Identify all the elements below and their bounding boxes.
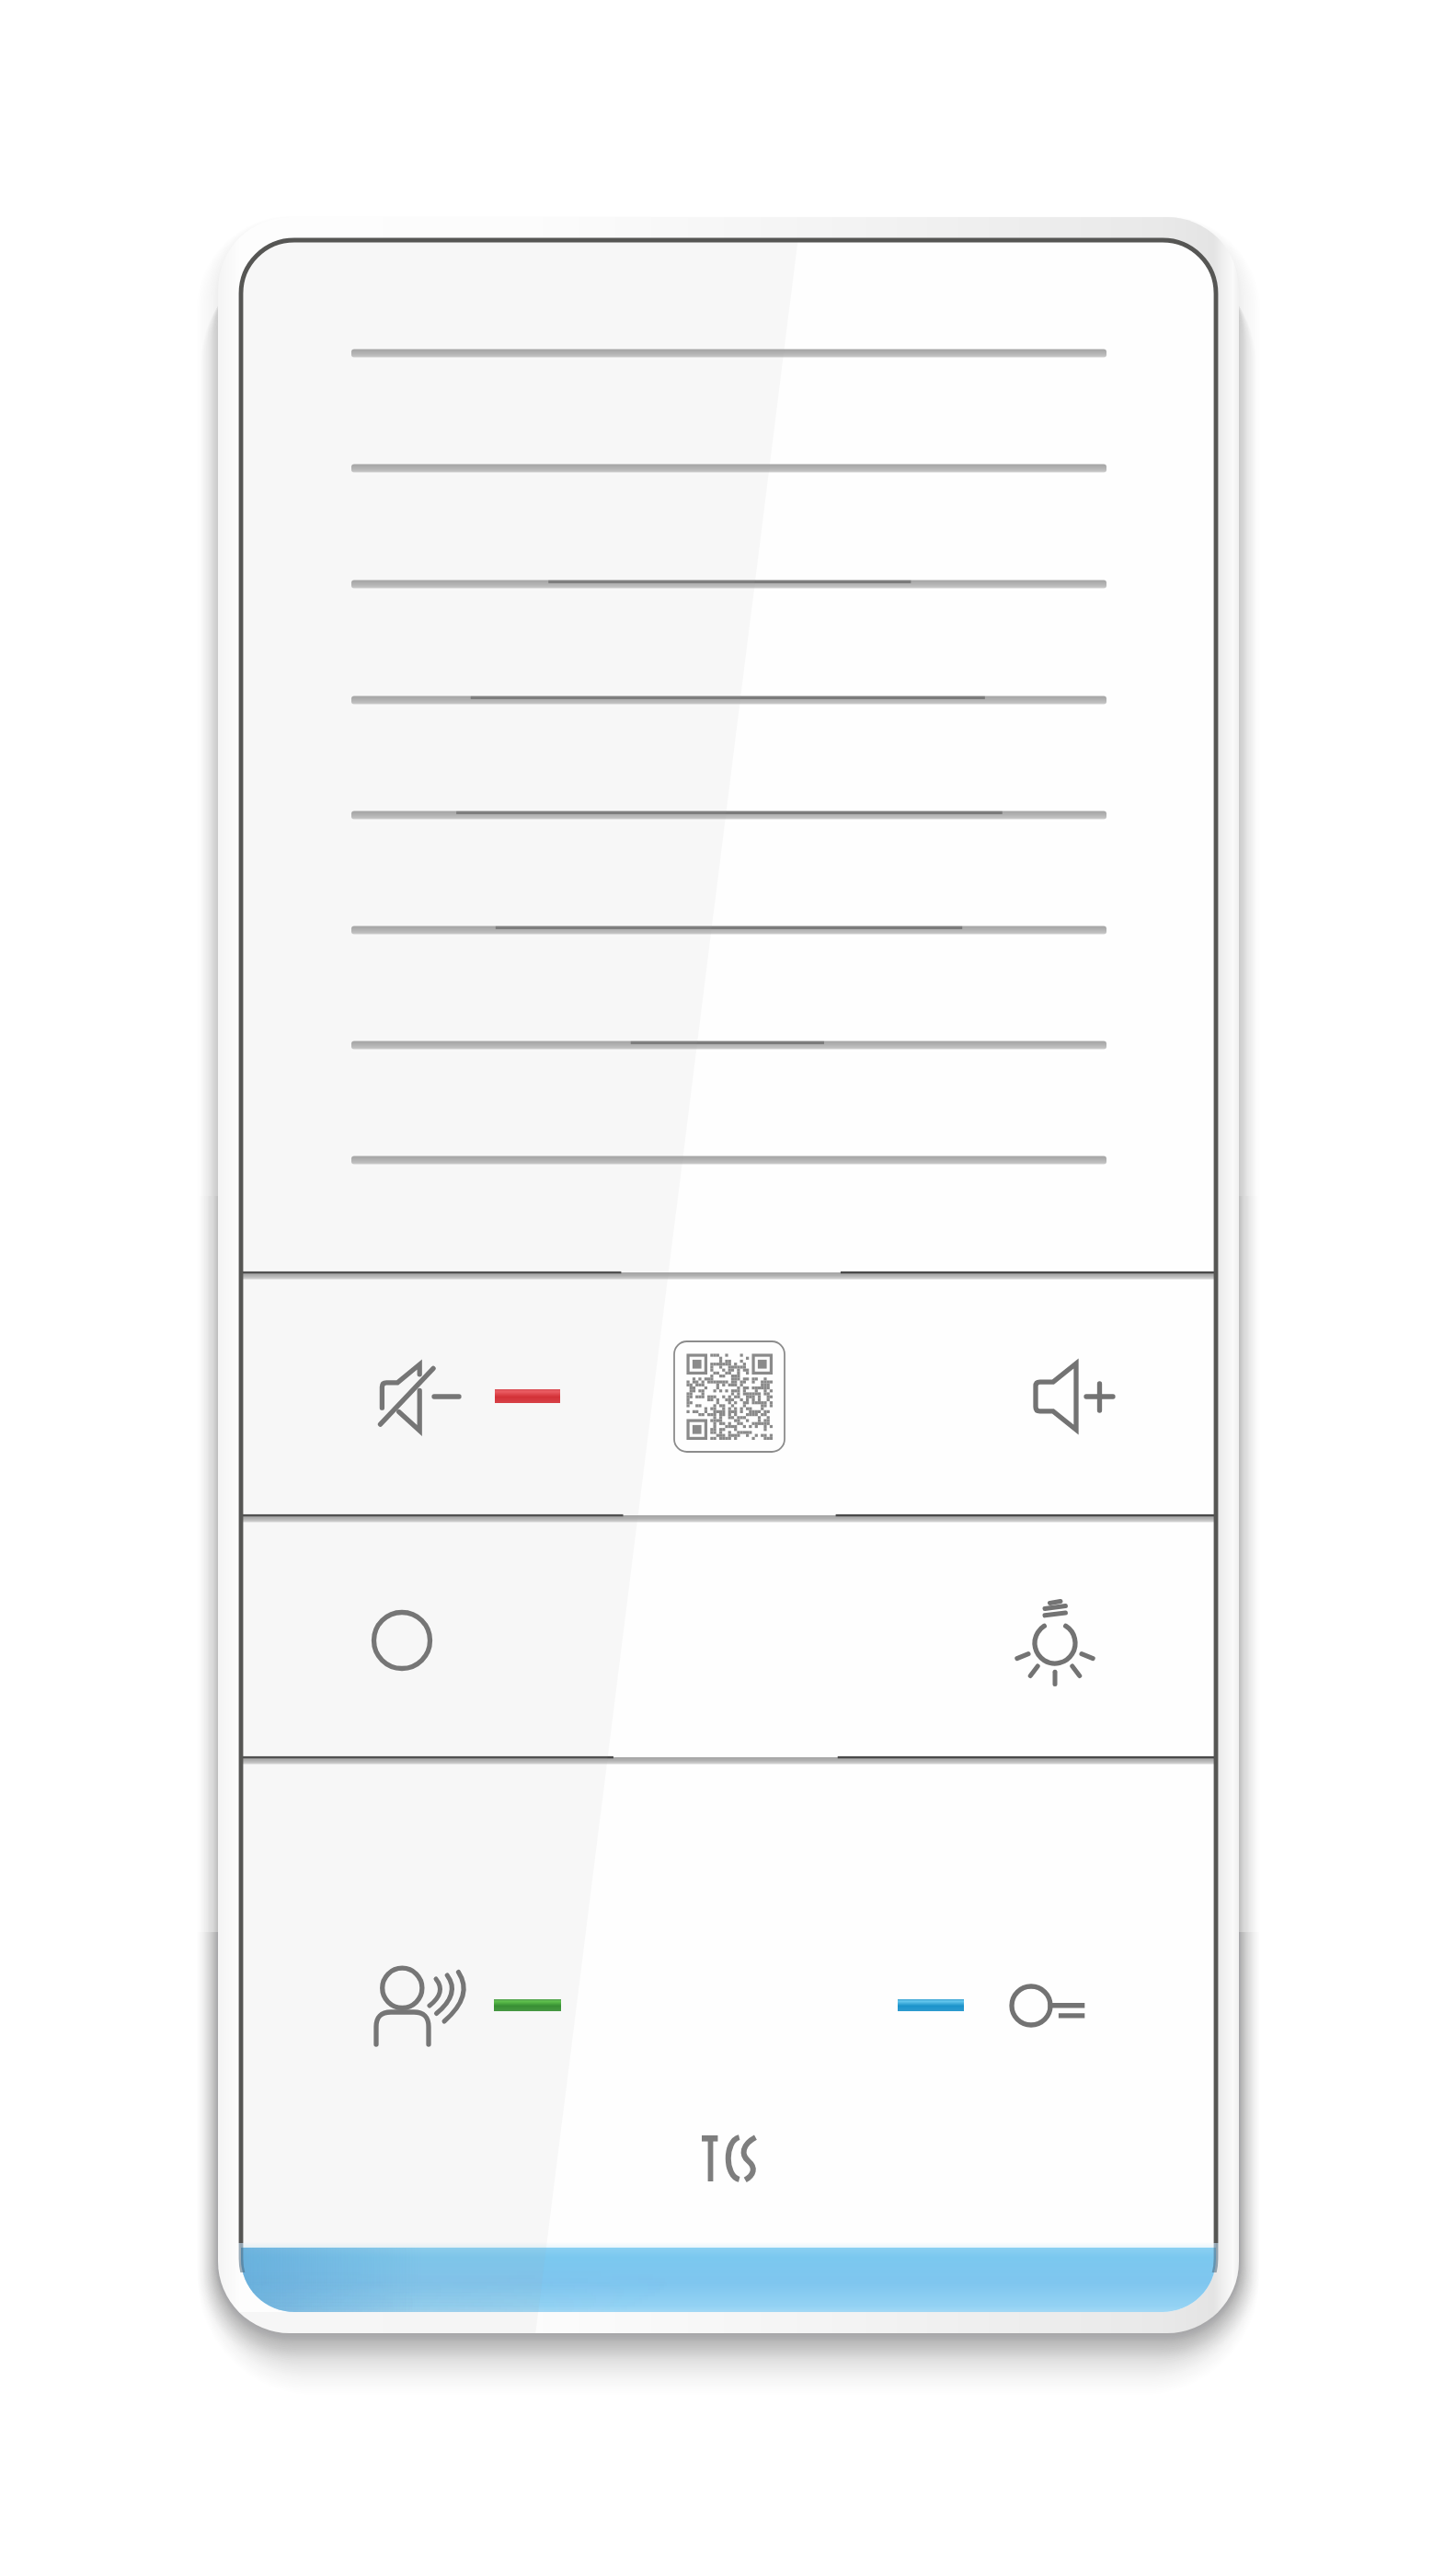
button[interactable]: Volume up (975, 1279, 1216, 1513)
button[interactable]: Call / speech (241, 1764, 607, 2098)
button[interactable]: Light (975, 1522, 1216, 1755)
button[interactable]: Door opener (828, 1764, 1216, 2098)
button[interactable]: Ring tone (241, 1522, 607, 1755)
button[interactable]: Volume down (241, 1279, 607, 1513)
button[interactable]: Scan QR code (644, 1325, 819, 1472)
